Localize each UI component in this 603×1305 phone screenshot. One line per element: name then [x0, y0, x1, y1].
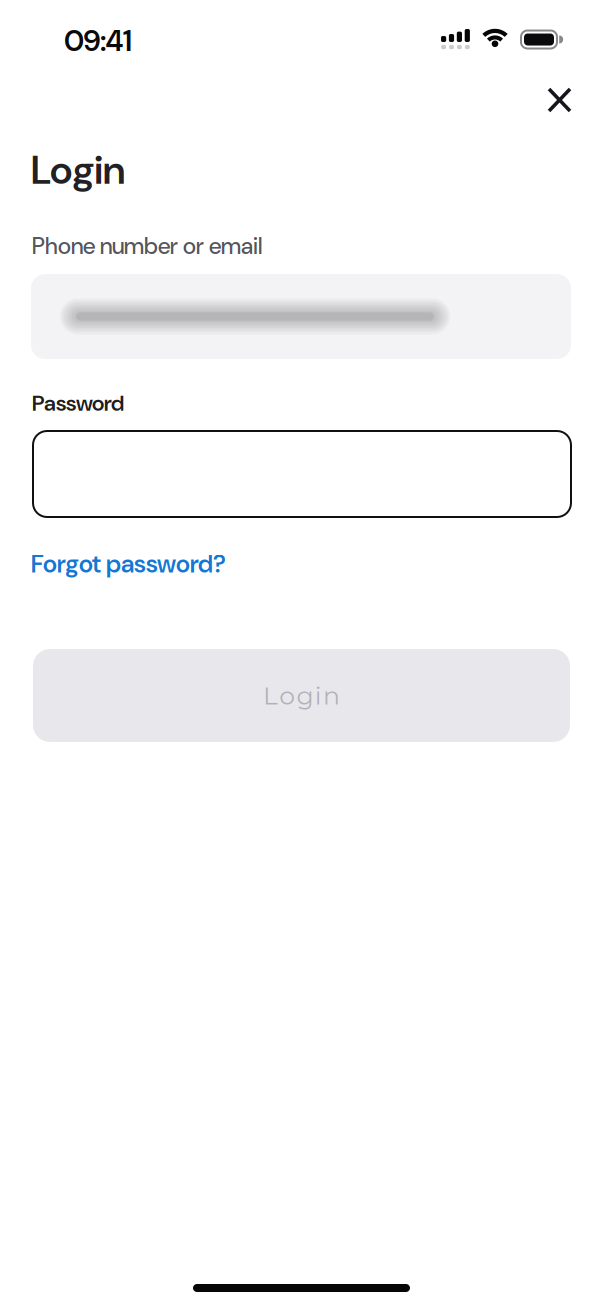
- button[interactable]: Login: [33, 649, 570, 742]
- staticText: Password: [32, 389, 124, 418]
- staticText: Forgot password?: [31, 548, 226, 580]
- button[interactable]: [537, 77, 582, 123]
- button[interactable]: [33, 431, 571, 517]
- staticText: Phone number or email: [32, 231, 262, 261]
- staticText: Login: [263, 680, 340, 711]
- button[interactable]: Forgot password?: [31, 548, 226, 580]
- staticText: Login: [31, 144, 125, 196]
- button[interactable]: [31, 274, 571, 359]
- staticText: 09:41: [64, 22, 132, 60]
